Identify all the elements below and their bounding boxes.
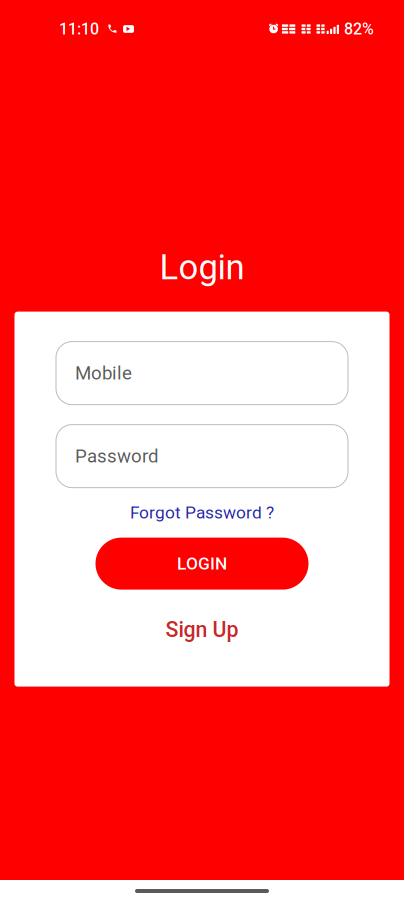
- button[interactable]: Password: [56, 425, 348, 488]
- staticText: Forgot Password ?: [130, 502, 274, 523]
- staticText: Sign Up: [165, 617, 238, 642]
- button[interactable]: Forgot Password ?: [56, 500, 348, 526]
- button[interactable]: Mobile: [56, 342, 348, 405]
- staticText: 82%: [344, 20, 374, 38]
- button[interactable]: LOGIN: [95, 538, 308, 590]
- staticText: Mobile: [75, 362, 132, 384]
- staticText: 11:10: [59, 20, 99, 38]
- staticText: Login: [159, 247, 244, 288]
- staticText: Password: [75, 445, 159, 467]
- button[interactable]: Sign Up: [95, 617, 308, 643]
- staticText: LOGIN: [177, 553, 227, 574]
